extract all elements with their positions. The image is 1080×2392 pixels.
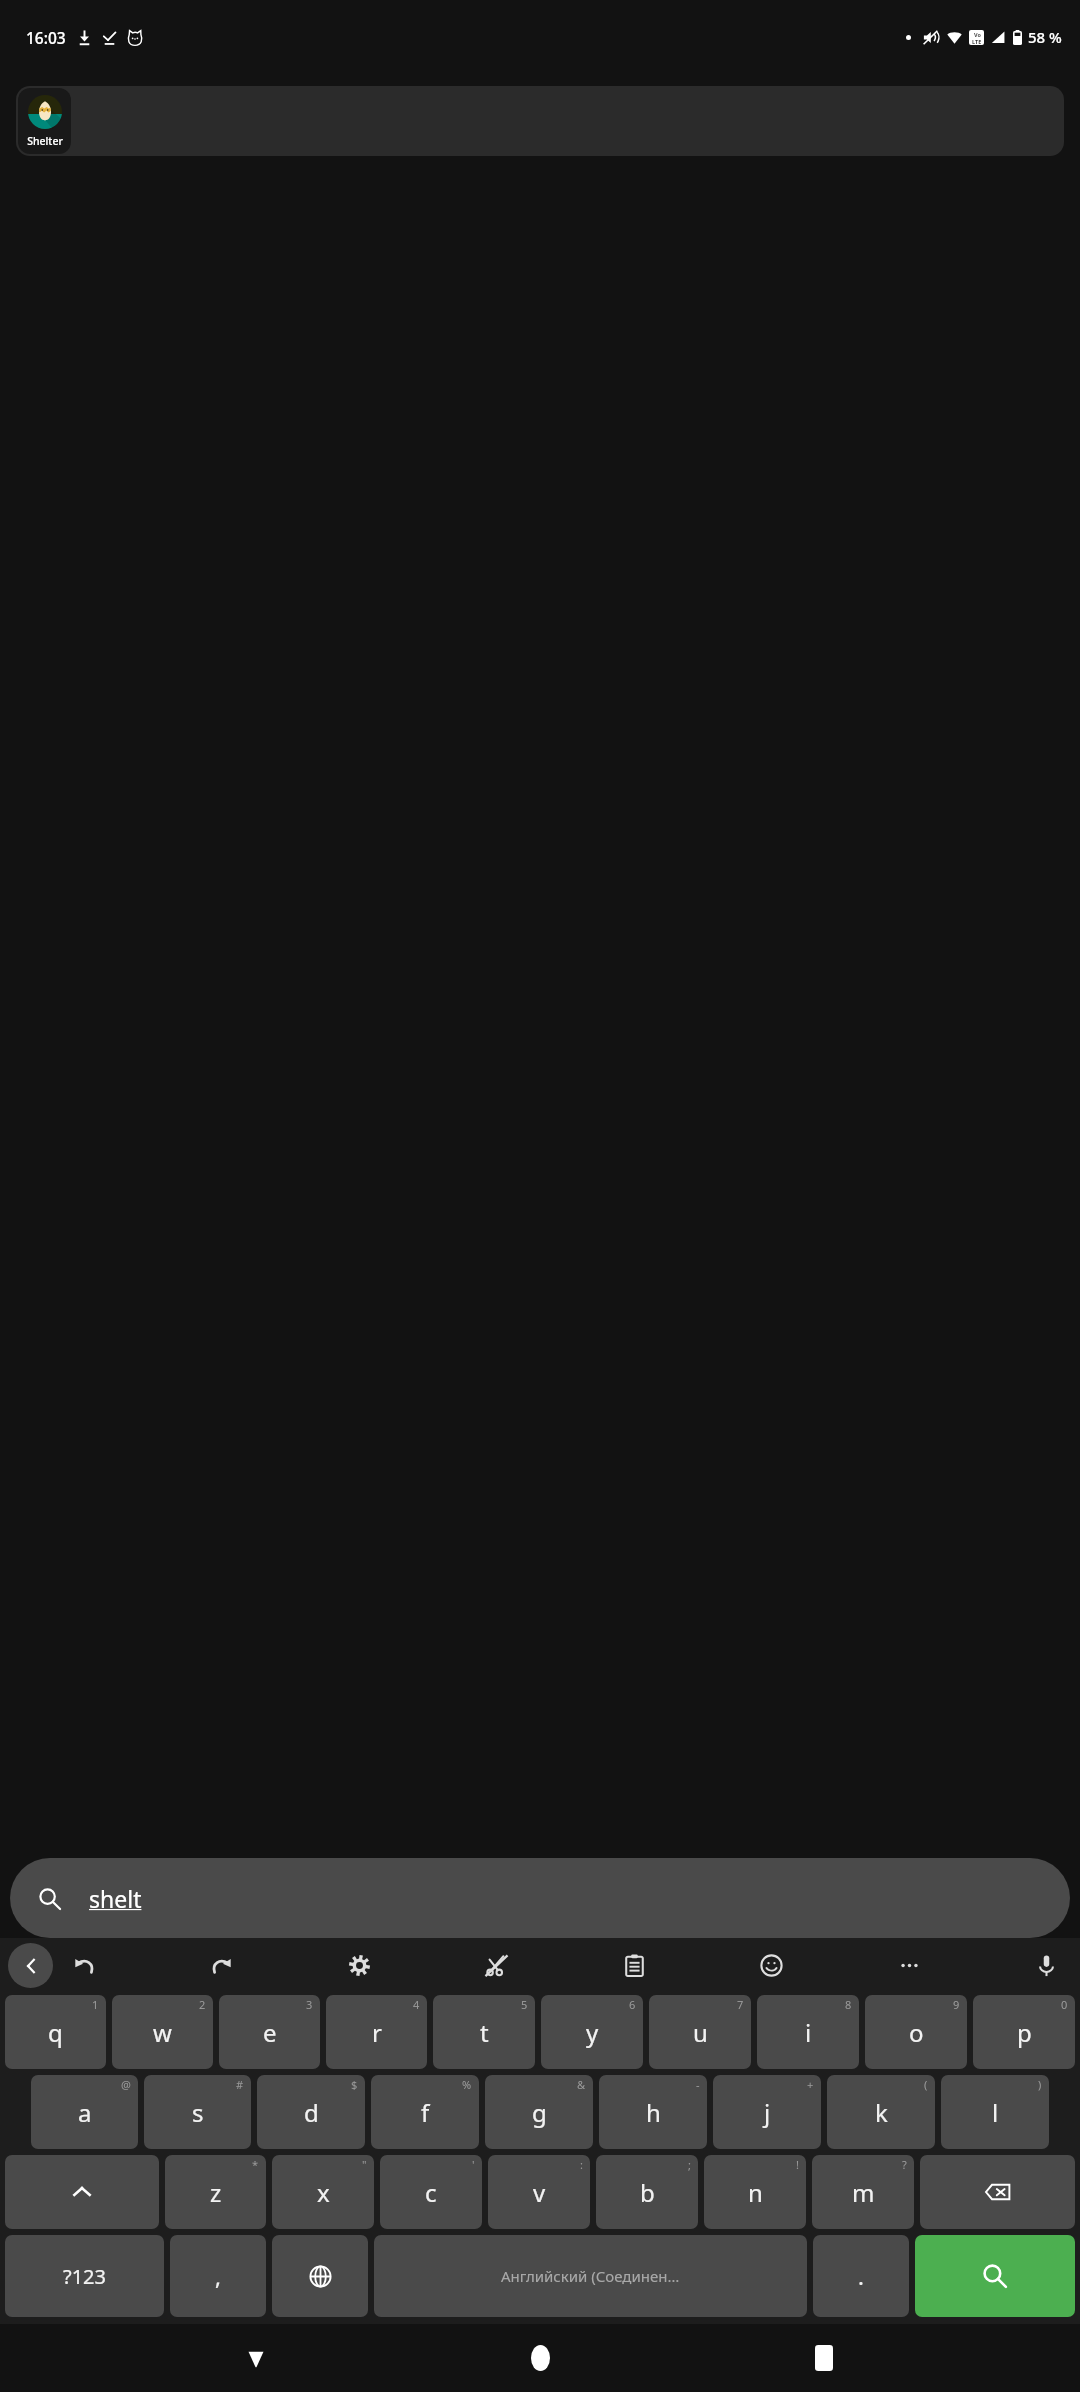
button[interactable]: Recent apps [796, 2330, 852, 2386]
button[interactable]: u [649, 1995, 751, 2069]
staticText: g [532, 2096, 547, 2129]
staticText: 58 % [1028, 27, 1062, 47]
button[interactable]: . [813, 2235, 909, 2317]
staticText: x [317, 2176, 330, 2209]
button[interactable]: Emoji [749, 1943, 793, 1987]
staticText: : [580, 2157, 583, 2172]
staticText: y [586, 2016, 599, 2049]
button[interactable]: l [941, 2075, 1049, 2149]
staticText: . [858, 2261, 864, 2291]
button[interactable]: Settings [337, 1943, 381, 1987]
button[interactable]: e [219, 1995, 320, 2069]
button[interactable]: Undo [62, 1943, 106, 1987]
staticText: " [362, 2157, 367, 2172]
button[interactable]: w [112, 1995, 213, 2069]
button[interactable]: , [170, 2235, 266, 2317]
staticText: 16:03 [26, 27, 66, 48]
staticText: + [807, 2077, 814, 2092]
staticText: Английский (Соединен… [501, 2266, 680, 2286]
staticText: t [480, 2016, 489, 2049]
button[interactable]: Cut disabled [474, 1943, 518, 1987]
staticText: k [875, 2096, 888, 2129]
button[interactable]: f [371, 2075, 479, 2149]
button[interactable]: o [865, 1995, 967, 2069]
staticText: e [263, 2016, 277, 2049]
staticText: $ [351, 2077, 358, 2092]
staticText: a [78, 2096, 92, 2129]
staticText: - [696, 2077, 700, 2092]
staticText: ?123 [63, 2263, 106, 2290]
staticText: l [992, 2096, 999, 2129]
staticText: d [304, 2096, 319, 2129]
staticText: v [533, 2176, 546, 2209]
button[interactable]: Shift [5, 2155, 159, 2229]
button[interactable]: p [973, 1995, 1075, 2069]
staticText: i [805, 2016, 812, 2049]
staticText: ' [472, 2157, 475, 2172]
button[interactable]: c [380, 2155, 482, 2229]
button[interactable]: Английский (Соединен… [374, 2235, 807, 2317]
button[interactable]: Home [512, 2330, 568, 2386]
button[interactable]: q [5, 1995, 106, 2069]
staticText: n [748, 2176, 763, 2209]
staticText: j [764, 2096, 771, 2129]
button[interactable]: Voice input [1024, 1943, 1068, 1987]
button[interactable]: ?123 [5, 2235, 164, 2317]
staticText: z [210, 2176, 222, 2209]
staticText: ? [902, 2157, 907, 2172]
button[interactable]: s [144, 2075, 251, 2149]
staticText: r [372, 2016, 382, 2049]
staticText: ) [1038, 2077, 1042, 2092]
button[interactable]: Clipboard [612, 1943, 656, 1987]
button[interactable]: a [31, 2075, 138, 2149]
button[interactable]: Redo [199, 1943, 243, 1987]
button[interactable]: More options [887, 1943, 931, 1987]
button[interactable]: shelt [10, 1858, 1070, 1938]
button[interactable]: k [827, 2075, 935, 2149]
button[interactable]: Back [8, 1943, 53, 1988]
button[interactable]: d [257, 2075, 365, 2149]
staticText: s [192, 2096, 204, 2129]
staticText: 5 [521, 1997, 528, 2012]
staticText: q [48, 2016, 63, 2049]
staticText: & [577, 2077, 586, 2092]
button[interactable]: n [704, 2155, 806, 2229]
staticText: ; [688, 2157, 691, 2172]
button[interactable]: b [596, 2155, 698, 2229]
button[interactable]: g [485, 2075, 593, 2149]
staticText: Shelter [27, 134, 63, 148]
button[interactable]: v [488, 2155, 590, 2229]
staticText: 0 [1061, 1997, 1068, 2012]
button[interactable]: Backspace [920, 2155, 1075, 2229]
staticText: f [421, 2096, 430, 2129]
button[interactable]: t [433, 1995, 535, 2069]
button[interactable]: x [272, 2155, 374, 2229]
staticText: # [236, 2077, 244, 2092]
staticText: 7 [737, 1997, 744, 2012]
button[interactable]: Change language [272, 2235, 368, 2317]
button[interactable]: Shelter [16, 86, 1064, 156]
button[interactable]: Search [915, 2235, 1075, 2317]
button[interactable]: i [757, 1995, 859, 2069]
button[interactable]: r [326, 1995, 427, 2069]
button[interactable]: j [713, 2075, 821, 2149]
staticText: c [425, 2176, 437, 2209]
staticText: shelt [89, 1883, 142, 1914]
staticText: b [640, 2176, 655, 2209]
staticText: 1 [92, 1997, 99, 2012]
staticText: @ [121, 2077, 131, 2092]
staticText: u [693, 2016, 708, 2049]
staticText: 9 [953, 1997, 960, 2012]
staticText: ! [796, 2157, 799, 2172]
button[interactable]: Hide keyboard [228, 2330, 284, 2386]
staticText: 3 [306, 1997, 313, 2012]
button[interactable]: Shelter [18, 88, 71, 154]
staticText: 6 [629, 1997, 636, 2012]
staticText: LTE [972, 38, 982, 45]
button[interactable]: m [812, 2155, 914, 2229]
button[interactable]: y [541, 1995, 643, 2069]
staticText: Vo [974, 31, 981, 38]
button[interactable]: h [599, 2075, 707, 2149]
button[interactable]: z [165, 2155, 266, 2229]
staticText: 2 [199, 1997, 206, 2012]
